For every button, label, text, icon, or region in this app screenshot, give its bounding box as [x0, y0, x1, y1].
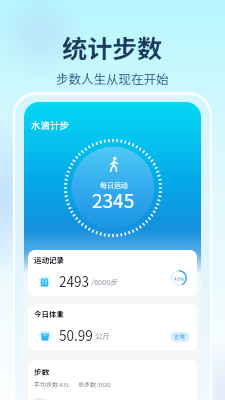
staticText: 公斤 — [95, 330, 110, 341]
button[interactable]: 正常 — [171, 332, 189, 342]
other: Record — [40, 277, 49, 287]
staticText: 100% — [34, 397, 46, 400]
button[interactable]: 今日体重 — [28, 304, 197, 351]
staticText: 50.99 — [59, 325, 93, 345]
staticText: /6000步 — [91, 276, 119, 287]
staticText: 41% — [174, 275, 185, 282]
button[interactable]: 运动记录 — [28, 250, 197, 296]
staticText: 平均步数 431 — [34, 380, 70, 389]
staticText: 统计步数 — [62, 29, 163, 65]
staticText: 2345 — [92, 186, 135, 214]
staticText: 步数人生从现在开始 — [56, 69, 169, 87]
button[interactable]: 步数 — [28, 360, 197, 400]
staticText: 运动记录 — [34, 254, 64, 265]
staticText: 总步数 3020 — [78, 380, 111, 389]
staticText: 今日体重 — [34, 308, 64, 319]
staticText: 正常 — [174, 333, 186, 341]
staticText: 水滴计步 — [31, 118, 70, 132]
staticText: 2493 — [59, 271, 89, 291]
other: Weight — [40, 331, 50, 341]
staticText: 每日运动 — [100, 180, 128, 190]
other: Walking — [109, 157, 119, 172]
staticText: 步数 — [34, 366, 49, 377]
